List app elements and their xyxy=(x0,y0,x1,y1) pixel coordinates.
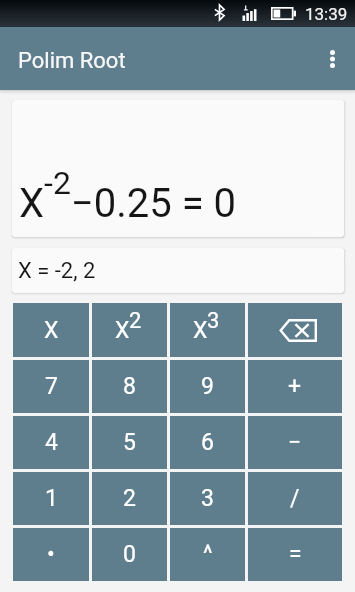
staticText: 3 xyxy=(201,485,214,512)
staticText: 3 xyxy=(207,308,220,334)
other: Backspace xyxy=(279,319,317,342)
staticText: X xyxy=(193,317,208,344)
button[interactable]: − xyxy=(248,416,342,469)
staticText: 8 xyxy=(123,373,136,400)
button[interactable]: X xyxy=(13,303,89,357)
staticText: X xyxy=(115,317,130,344)
button[interactable]: 6 xyxy=(170,416,245,469)
button[interactable]: • xyxy=(13,528,89,581)
button[interactable]: 9 xyxy=(170,360,245,413)
button[interactable]: 8 xyxy=(92,360,167,413)
button[interactable]: 7 xyxy=(13,360,89,413)
button[interactable]: X xyxy=(92,303,167,357)
button[interactable]: / xyxy=(248,472,342,525)
button[interactable]: = xyxy=(248,528,342,581)
staticText: 13:39 xyxy=(305,4,348,24)
staticText: X-2−0.25 = 0 xyxy=(19,164,237,227)
button[interactable]: More options xyxy=(309,27,355,90)
staticText: − xyxy=(288,429,302,456)
button[interactable]: 4 xyxy=(13,416,89,469)
staticText: 5 xyxy=(123,429,136,456)
staticText: / xyxy=(290,485,300,512)
staticText: 7 xyxy=(45,373,58,400)
button[interactable]: 0 xyxy=(92,528,167,581)
staticText: = xyxy=(289,541,302,568)
staticText: 9 xyxy=(201,373,214,400)
staticText: X xyxy=(44,317,59,344)
staticText: 4 xyxy=(45,429,58,456)
button[interactable]: 1 xyxy=(13,472,89,525)
staticText: Polim Root xyxy=(18,48,126,74)
button[interactable]: + xyxy=(248,360,342,413)
staticText: 2 xyxy=(129,308,142,334)
button[interactable]: Backspace xyxy=(248,303,342,357)
staticText: 6 xyxy=(201,429,214,456)
staticText: X = -2, 2 xyxy=(18,258,96,284)
staticText: 2 xyxy=(123,485,136,512)
button[interactable]: 5 xyxy=(92,416,167,469)
staticText: 1 xyxy=(45,485,58,512)
button[interactable]: 2 xyxy=(92,472,167,525)
button[interactable]: ^ xyxy=(170,528,245,581)
staticText: + xyxy=(288,373,302,400)
button[interactable]: X xyxy=(170,303,245,357)
staticText: 0 xyxy=(123,541,136,568)
staticText: ^ xyxy=(203,541,213,568)
button[interactable]: 3 xyxy=(170,472,245,525)
staticText: • xyxy=(47,541,55,568)
